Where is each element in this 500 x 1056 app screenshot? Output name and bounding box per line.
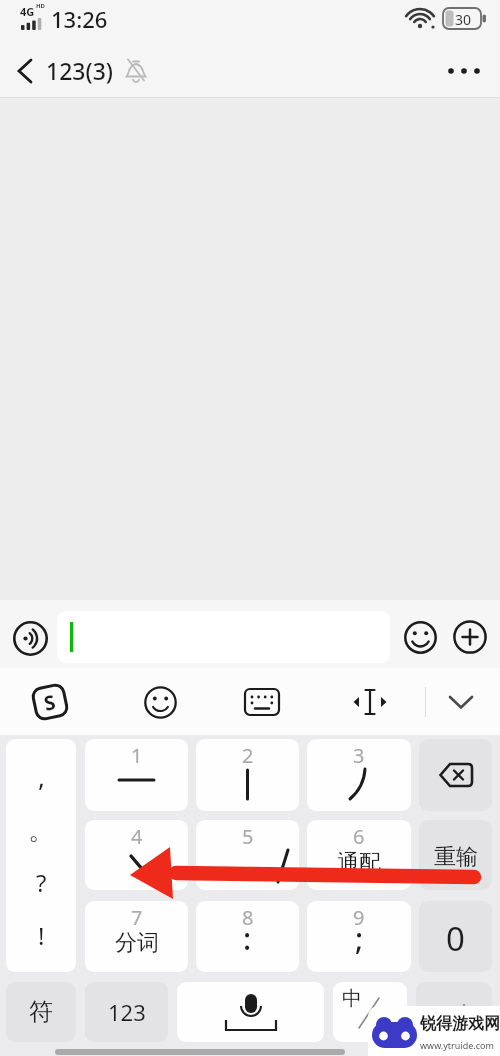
button[interactable]: 0 <box>419 901 492 972</box>
button[interactable]: S <box>30 682 70 722</box>
staticText: 4 <box>131 823 143 850</box>
button[interactable] <box>419 739 492 811</box>
staticText: 0 <box>446 916 465 961</box>
button[interactable]: 4 <box>85 820 188 890</box>
button[interactable] <box>351 686 389 718</box>
staticText: 英 <box>375 1012 392 1033</box>
button[interactable] <box>57 611 390 663</box>
staticText: 通配 <box>337 849 381 877</box>
button[interactable] <box>12 56 40 86</box>
staticText: 7 <box>131 904 143 931</box>
button[interactable]: 5 <box>196 820 299 890</box>
button[interactable] <box>144 686 177 719</box>
staticText: 123(3) <box>46 55 113 86</box>
staticText: 8 <box>242 904 254 931</box>
button[interactable] <box>453 620 487 654</box>
button[interactable]: 1 <box>85 739 188 811</box>
staticText: ! <box>38 919 45 952</box>
staticText: 123 <box>108 997 146 1027</box>
staticText: 锐得游戏网 <box>420 1014 500 1034</box>
staticText: 。 <box>28 814 54 847</box>
staticText: HD <box>36 2 45 10</box>
staticText: 分词 <box>115 929 159 957</box>
button[interactable]: 6 <box>307 820 411 890</box>
button[interactable]: 7 <box>85 901 188 972</box>
staticText: 1 <box>131 742 143 769</box>
staticText: 5 <box>242 823 254 850</box>
staticText: www.ytruide.com <box>420 1039 494 1051</box>
staticText: 30 <box>455 10 472 29</box>
staticText: , <box>38 759 45 794</box>
button[interactable] <box>404 621 437 654</box>
staticText: 6 <box>353 823 365 850</box>
button[interactable]: 8 <box>196 901 299 972</box>
button[interactable]: 123 <box>85 982 168 1042</box>
button[interactable]: 重输 <box>419 820 492 890</box>
staticText: ; <box>355 918 364 959</box>
staticText: 中 <box>342 986 362 1011</box>
staticText: 符 <box>29 997 53 1027</box>
button[interactable]: 9 <box>307 901 411 972</box>
button[interactable]: 3 <box>307 739 411 811</box>
staticText: 4G <box>20 4 35 19</box>
staticText: ? <box>36 866 47 899</box>
button[interactable]: 中 <box>333 982 407 1042</box>
button[interactable] <box>177 982 324 1042</box>
staticText: 3 <box>353 742 365 769</box>
button[interactable]: 符 <box>6 982 76 1042</box>
button[interactable] <box>444 58 486 84</box>
button[interactable] <box>446 694 476 711</box>
staticText: : <box>243 918 252 959</box>
staticText: S <box>41 688 59 717</box>
staticText: 13:26 <box>51 4 108 34</box>
button[interactable]: , <box>6 739 76 972</box>
button[interactable] <box>416 982 492 1042</box>
button[interactable] <box>244 688 280 716</box>
staticText: 9 <box>353 904 365 931</box>
button[interactable]: 2 <box>196 739 299 811</box>
staticText: 2 <box>242 742 254 769</box>
button[interactable] <box>12 620 49 657</box>
staticText: 重输 <box>434 843 478 871</box>
